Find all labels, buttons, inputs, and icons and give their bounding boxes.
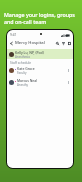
button[interactable]: Back (8, 40, 15, 47)
staticText: Mercy Hospital (15, 40, 45, 46)
button[interactable]: More (66, 40, 72, 46)
button[interactable]: More options (66, 68, 71, 73)
button[interactable]: Search (54, 40, 60, 46)
staticText: Staff schedule (10, 61, 32, 65)
staticText: Manage your logins, groups (4, 11, 75, 18)
staticText: Kelly Lu, NP, (Pod) (15, 50, 44, 55)
staticText: Kate Grace (17, 66, 35, 71)
staticText: and on-call team (4, 18, 47, 25)
button[interactable]: Kate Grace (7, 65, 73, 75)
button[interactable]: Kelly Lu, NP, (Pod) (7, 49, 73, 59)
button[interactable]: Filter (60, 40, 66, 46)
staticText: 9:41 (10, 33, 17, 37)
button[interactable]: Marcus Neal (7, 77, 73, 87)
staticText: Anesthy (17, 83, 28, 87)
staticText: Faculty (17, 71, 27, 75)
staticText: Marcus Neal (17, 78, 38, 83)
staticText: Anesthesia (15, 55, 30, 59)
button[interactable]: More options (66, 80, 71, 85)
